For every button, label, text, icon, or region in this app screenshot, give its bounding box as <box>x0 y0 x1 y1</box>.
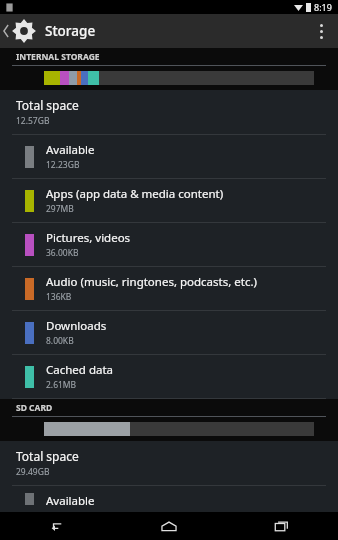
button[interactable]: Available <box>0 486 338 512</box>
button[interactable]: Downloads <box>0 311 338 355</box>
staticText: Apps (app data & media content) <box>46 186 224 202</box>
staticText: Total space <box>16 448 79 464</box>
button[interactable]: Home <box>112 512 225 540</box>
button[interactable]: Cached data <box>0 355 338 399</box>
button[interactable]: Total space <box>0 441 338 486</box>
staticText: INTERNAL STORAGE <box>16 51 100 63</box>
staticText: Available <box>46 493 95 505</box>
button[interactable]: Pictures, videos <box>0 223 338 267</box>
staticText: 297MB <box>46 203 74 215</box>
staticText: Cached data <box>46 362 114 378</box>
staticText: 2.61MB <box>46 379 77 391</box>
staticText: Downloads <box>46 318 107 334</box>
button[interactable]: More options <box>304 14 338 48</box>
staticText: Storage <box>45 22 96 40</box>
button[interactable]: Navigate up, Settings <box>0 14 37 48</box>
staticText: 29.49GB <box>16 466 50 478</box>
staticText: 136KB <box>46 291 72 303</box>
staticText: Audio (music, ringtones, podcasts, etc.) <box>46 274 257 290</box>
button[interactable]: Back <box>0 512 112 540</box>
button[interactable]: Total space <box>0 90 338 135</box>
button[interactable]: Audio (music, ringtones, podcasts, etc.) <box>0 267 338 311</box>
button[interactable]: Available <box>0 135 338 179</box>
staticText: Available <box>46 142 95 158</box>
staticText: SD CARD <box>16 402 53 414</box>
staticText: 12.23GB <box>46 159 80 171</box>
staticText: Pictures, videos <box>46 230 131 246</box>
staticText: 8.00KB <box>46 335 74 347</box>
staticText: 8:19 <box>314 1 332 13</box>
button[interactable]: Apps (app data & media content) <box>0 179 338 223</box>
staticText: 12.57GB <box>16 115 50 127</box>
button[interactable]: Recent apps <box>225 512 338 540</box>
staticText: 36.00KB <box>46 247 79 259</box>
staticText: Total space <box>16 97 79 113</box>
